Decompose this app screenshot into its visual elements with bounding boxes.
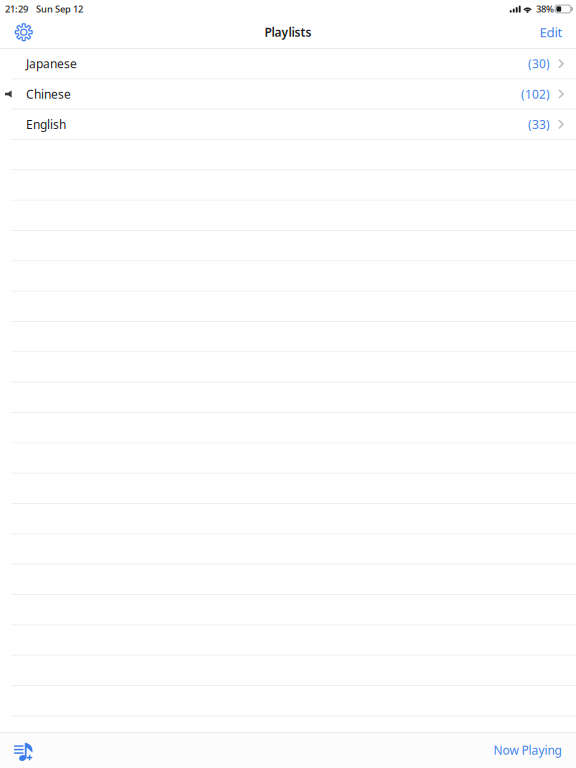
staticText: Playlists	[264, 24, 311, 40]
button[interactable]: Japanese	[0, 49, 576, 78]
button[interactable]: Settings	[0, 18, 45, 49]
staticText: (102)	[521, 86, 550, 102]
staticText: 21:29	[5, 3, 28, 15]
staticText: Chinese	[26, 86, 71, 102]
button[interactable]: Now Playing	[481, 732, 576, 768]
staticText: (33)	[528, 116, 550, 132]
staticText: 38%	[536, 3, 554, 15]
staticText: Now Playing	[493, 742, 561, 758]
staticText: Japanese	[26, 56, 77, 72]
button[interactable]: Chinese	[0, 79, 576, 109]
button[interactable]: New playlist	[0, 732, 44, 768]
staticText: Edit	[539, 23, 562, 41]
staticText: Sun Sep 12	[36, 3, 83, 15]
button[interactable]: English	[0, 110, 576, 139]
button[interactable]: Edit	[527, 18, 576, 49]
staticText: English	[26, 116, 66, 132]
staticText: (30)	[528, 56, 550, 72]
